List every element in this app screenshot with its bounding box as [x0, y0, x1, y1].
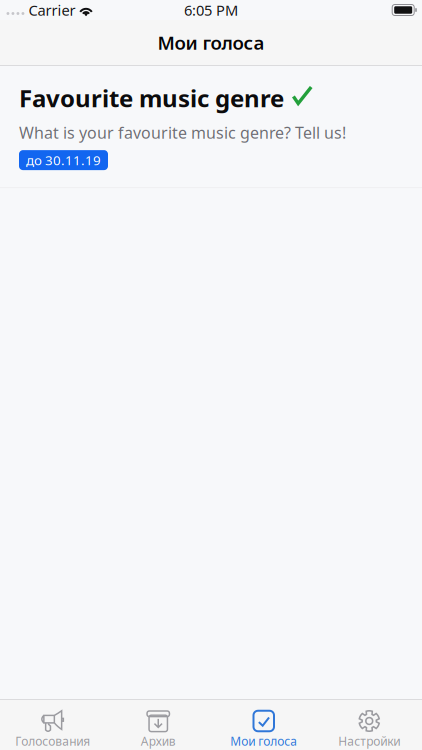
staticText: Favourite music genre [19, 82, 284, 114]
button[interactable]: Настройки [316, 700, 422, 750]
staticText: What is your favourite music genre? Tell… [19, 122, 346, 143]
button[interactable]: Голосования [0, 700, 105, 750]
staticText: Мои голоса [157, 30, 264, 55]
staticText: Мои голоса [230, 733, 297, 749]
staticText: Carrier [28, 0, 75, 20]
staticText: до 30.11.19 [26, 151, 101, 169]
button[interactable]: Мои голоса [211, 700, 316, 750]
staticText: 6:05 PM [184, 0, 238, 20]
button[interactable]: Favourite music genre [0, 66, 422, 187]
staticText: Архив [141, 733, 176, 749]
staticText: Настройки [338, 733, 400, 749]
button[interactable]: Архив [105, 700, 211, 750]
staticText: Голосования [15, 733, 90, 749]
